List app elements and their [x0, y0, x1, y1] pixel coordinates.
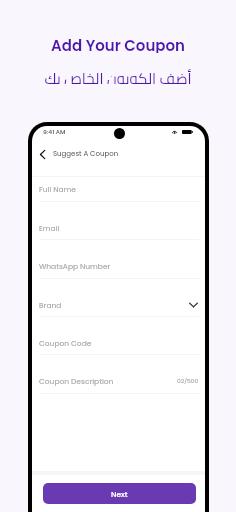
button[interactable]: Coupon Code: [32, 317, 205, 356]
button[interactable]: Full Name: [32, 177, 205, 201]
staticText: أضف الكوبون الخاص بك: [44, 64, 192, 84]
staticText: 02/500: [177, 377, 199, 385]
staticText: Add Your Coupon: [51, 35, 185, 53]
button[interactable]: Email: [32, 202, 205, 240]
button[interactable]: Coupon Description: [32, 355, 205, 394]
staticText: Brand: [39, 300, 62, 310]
staticText: Next: [111, 489, 128, 499]
button[interactable]: Next: [43, 483, 196, 504]
staticText: WhatsApp Number: [39, 261, 111, 271]
staticText: Coupon Code: [39, 338, 92, 348]
staticText: 9:41 AM: [43, 128, 66, 136]
button[interactable]: WhatsApp Number: [32, 240, 205, 279]
staticText: Full Name: [39, 184, 76, 194]
button[interactable]: Brand: [32, 279, 205, 317]
button[interactable]: Back: [38, 147, 119, 161]
staticText: Email: [39, 223, 60, 233]
other: Back: [38, 148, 47, 160]
staticText: Suggest A Coupon: [53, 149, 119, 159]
staticText: Coupon Description: [39, 376, 114, 386]
